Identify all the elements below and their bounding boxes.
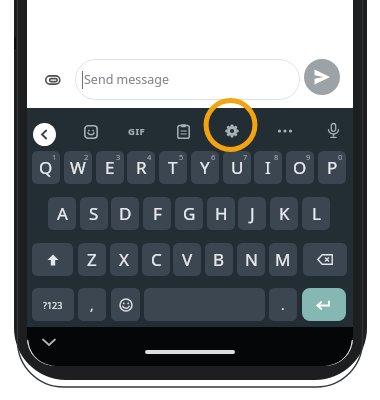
staticText: 3 [116,152,121,162]
button[interactable]: R [127,151,155,184]
button[interactable]: W [64,151,92,184]
button[interactable]: M [269,243,297,276]
button[interactable]: P [318,151,346,184]
staticText: H [215,202,228,225]
button[interactable] [277,129,293,133]
button[interactable]: O [286,151,314,184]
button[interactable] [42,338,56,347]
button[interactable] [327,123,340,139]
button[interactable]: D [111,197,139,230]
button[interactable]: N [237,243,265,276]
staticText: B [213,248,225,271]
staticText: 2 [84,152,89,162]
staticText: . [281,296,285,314]
staticText: O [293,156,307,179]
button[interactable]: Y [191,151,219,184]
staticText: U [231,156,244,179]
staticText: X [119,248,129,271]
button[interactable]: K [270,197,298,230]
staticText: 5 [179,152,184,162]
button[interactable]: U [223,151,251,184]
staticText: Z [87,248,97,271]
button[interactable]: B [205,243,233,276]
button[interactable]: ?123 [32,288,74,321]
staticText: G [183,202,196,225]
button[interactable] [303,243,347,276]
button[interactable]: H [207,197,235,230]
button[interactable]: Z [78,243,106,276]
staticText: GIF [128,125,146,138]
staticText: A [57,202,68,225]
staticText: 0 [338,152,343,162]
staticText: K [279,202,290,225]
button[interactable] [32,243,73,276]
button[interactable]: A [48,197,76,230]
button[interactable]: Q [32,151,60,184]
staticText: , [90,296,94,314]
staticText: 8 [274,152,279,162]
staticText: I [265,156,271,179]
staticText: 7 [243,152,248,162]
staticText: 4 [147,152,152,162]
button[interactable]: , [78,288,106,321]
staticText: N [245,248,258,271]
button[interactable]: . [269,288,297,321]
staticText: Q [39,156,53,179]
staticText: Y [200,156,210,179]
staticText: T [168,156,178,179]
button[interactable]: GIF [123,124,151,139]
button[interactable] [84,125,98,139]
button[interactable] [33,123,56,146]
button[interactable]: X [110,243,138,276]
button[interactable]: Send message [75,59,300,100]
staticText: M [275,248,291,271]
button[interactable]: V [173,243,201,276]
button[interactable]: T [159,151,187,184]
staticText: W [70,156,86,179]
staticText: D [119,202,132,225]
button[interactable] [177,124,190,139]
staticText: L [312,202,321,225]
staticText: ?123 [43,299,63,311]
button[interactable]: C [142,243,170,276]
staticText: V [182,248,193,271]
button[interactable] [111,288,140,321]
button[interactable]: I [254,151,282,184]
staticText: 9 [306,152,311,162]
staticText: F [153,202,162,225]
staticText: P [327,156,338,179]
button[interactable] [304,59,340,95]
staticText: C [151,248,162,271]
button[interactable] [225,124,239,138]
staticText: R [136,156,147,179]
staticText: 1 [52,152,57,162]
staticText: Send message [84,71,170,88]
button[interactable]: S [80,197,108,230]
staticText: S [89,202,99,225]
button[interactable]: G [175,197,203,230]
button[interactable]: F [143,197,171,230]
button[interactable]: J [238,197,266,230]
staticText: 6 [211,152,216,162]
button[interactable] [302,288,346,321]
button[interactable]: L [302,197,330,230]
staticText: J [250,202,255,225]
staticText: E [105,156,115,179]
button[interactable]: E [96,151,124,184]
